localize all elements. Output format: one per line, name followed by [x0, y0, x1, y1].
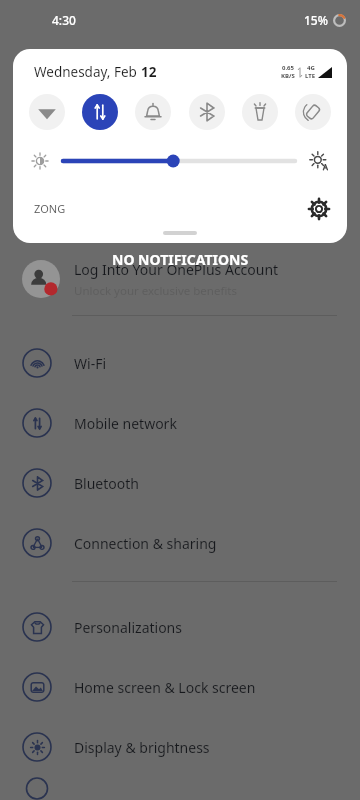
button[interactable]: Home screen & Lock screen — [0, 657, 360, 717]
button[interactable]: Auto brightness — [309, 151, 329, 171]
staticText: LTE — [305, 72, 316, 80]
staticText: Log Into Your OnePlus Account — [74, 260, 279, 279]
staticText: 4G — [307, 64, 315, 72]
button[interactable]: Flashlight — [242, 94, 278, 130]
button[interactable]: Connection & sharing — [0, 513, 360, 573]
staticText: 15% — [304, 12, 328, 28]
button[interactable]: Auto rotate — [295, 94, 331, 130]
button[interactable]: Log Into Your OnePlus Account — [0, 248, 360, 310]
button[interactable] — [0, 777, 360, 800]
staticText: Unlock your exclusive benefits — [74, 283, 237, 299]
button[interactable]: Mobile data — [82, 94, 118, 130]
button[interactable]: Bluetooth — [0, 453, 360, 513]
staticText: Bluetooth — [74, 474, 139, 493]
staticText: Wi-Fi — [74, 354, 107, 373]
staticText: ZONG — [34, 201, 66, 216]
staticText: 0.65 — [282, 64, 294, 72]
staticText: Connection & sharing — [74, 534, 217, 553]
button[interactable]: Ringer — [135, 94, 171, 130]
button[interactable]: Settings — [307, 197, 331, 221]
button[interactable]: Wi-Fi — [0, 333, 360, 393]
staticText: Mobile network — [74, 414, 177, 433]
button[interactable]: Mobile network — [0, 393, 360, 453]
button[interactable] — [63, 150, 295, 172]
staticText: 12 — [141, 63, 157, 81]
button[interactable]: Personalizations — [0, 597, 360, 657]
staticText: Display & brightness — [74, 738, 210, 757]
staticText: Personalizations — [74, 618, 182, 637]
staticText: KB/S — [281, 72, 295, 80]
button[interactable]: Bluetooth — [189, 94, 225, 130]
staticText: Wednesday, Feb — [34, 63, 141, 81]
button[interactable]: Display & brightness — [0, 717, 360, 777]
button[interactable]: Wi-Fi — [29, 94, 65, 130]
staticText: Home screen & Lock screen — [74, 678, 256, 697]
staticText: 4:30 — [52, 12, 76, 28]
staticText: NO NOTIFICATIONS — [112, 250, 249, 269]
